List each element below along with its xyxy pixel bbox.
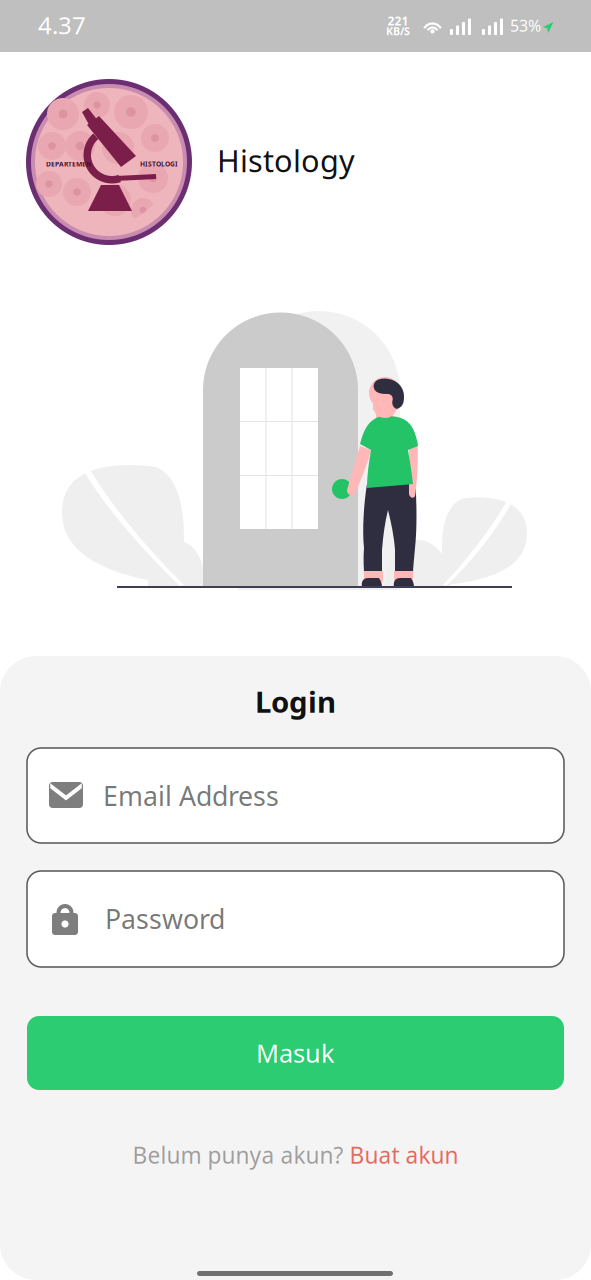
staticText: Login bbox=[255, 682, 336, 721]
button[interactable]: Password bbox=[27, 871, 564, 967]
staticText: 53% bbox=[510, 15, 541, 36]
staticText: 221 bbox=[387, 13, 408, 29]
staticText: Email Address bbox=[103, 778, 279, 813]
staticText: KB/S bbox=[386, 24, 410, 38]
button[interactable]: Email Address bbox=[27, 748, 564, 843]
staticText: Histology bbox=[217, 140, 355, 181]
staticText: DEPARTEMEN bbox=[46, 160, 91, 168]
staticText: 4.37 bbox=[38, 9, 86, 41]
staticText: Belum punya akun? bbox=[132, 1140, 343, 1170]
button[interactable]: Masuk bbox=[27, 1016, 564, 1090]
button[interactable]: Belum punya akun? bbox=[0, 1138, 591, 1172]
staticText: Masuk bbox=[256, 1036, 335, 1070]
staticText: Password bbox=[105, 901, 225, 936]
staticText: HISTOLOGI bbox=[140, 160, 178, 168]
staticText: Buat akun bbox=[349, 1140, 458, 1170]
